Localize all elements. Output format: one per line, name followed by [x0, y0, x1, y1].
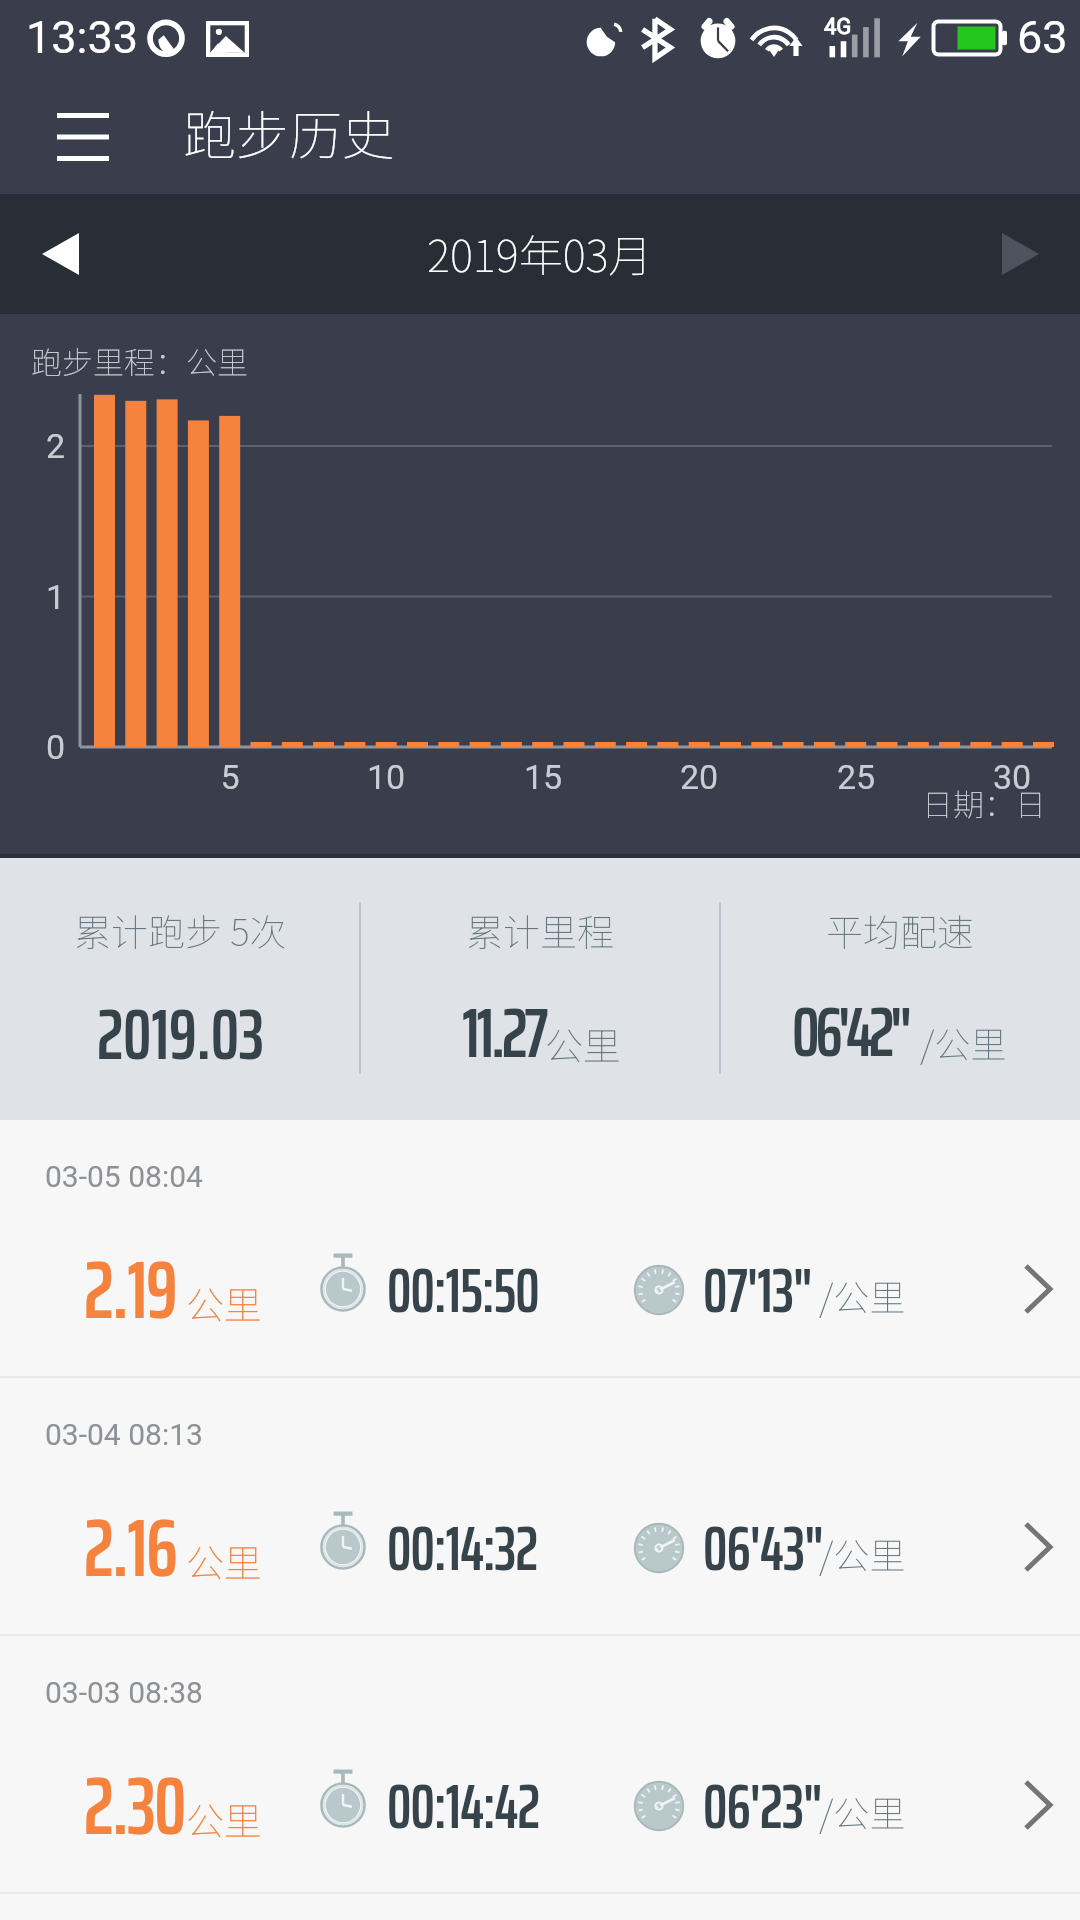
button[interactable]: Next month	[960, 194, 1080, 314]
staticText: 日期：日	[922, 780, 1046, 825]
staticText: 07'13"	[703, 1243, 812, 1339]
staticText: 跑步历史	[183, 94, 395, 171]
staticText: /公里	[819, 1785, 906, 1837]
staticText: 2.30	[84, 1743, 185, 1869]
staticText: 00:14:42	[387, 1759, 540, 1855]
staticText: 1	[46, 577, 66, 617]
staticText: 30	[982, 757, 1042, 797]
staticText: /公里	[920, 1016, 1007, 1068]
staticText: 63	[1017, 11, 1068, 64]
staticText: 4G	[824, 14, 852, 40]
staticText: 公里	[545, 1016, 622, 1071]
staticText: 10	[356, 757, 416, 797]
button[interactable]: Menu	[18, 80, 148, 194]
button[interactable]: View run detail	[996, 1494, 1080, 1578]
staticText: 03-04 08:13	[45, 1417, 203, 1452]
button[interactable]: 03-03 08:38	[0, 1636, 1080, 1892]
staticText: 06'42"	[792, 978, 908, 1087]
staticText: 06'23"	[703, 1759, 822, 1855]
staticText: 2	[46, 426, 66, 466]
button[interactable]: Previous month	[0, 194, 120, 314]
staticText: 13:33	[26, 11, 139, 64]
staticText: 累计跑步 5次	[74, 903, 287, 957]
button[interactable]: 03-05 08:04	[0, 1120, 1080, 1376]
staticText: 2019年03月	[427, 221, 653, 285]
staticText: 公里	[186, 1275, 263, 1330]
staticText: 00:14:32	[387, 1501, 538, 1597]
staticText: /公里	[819, 1527, 906, 1579]
staticText: 2.19	[84, 1227, 177, 1353]
button[interactable]: View run detail	[996, 1752, 1080, 1836]
staticText: 06'43"	[703, 1501, 823, 1597]
staticText: 0	[46, 727, 66, 767]
staticText: 03-03 08:38	[45, 1675, 203, 1710]
staticText: 20	[669, 757, 729, 797]
staticText: 平均配速	[826, 903, 974, 957]
staticText: 5	[200, 757, 260, 797]
staticText: 跑步里程：公里	[31, 338, 248, 383]
staticText: 00:15:50	[387, 1243, 539, 1339]
staticText: /公里	[819, 1269, 906, 1321]
staticText: 25	[826, 757, 886, 797]
button[interactable]: View run detail	[996, 1236, 1080, 1320]
staticText: 11.27	[462, 978, 546, 1088]
staticText: 公里	[186, 1533, 263, 1588]
staticText: 03-05 08:04	[45, 1159, 203, 1194]
button[interactable]: 03-04 08:13	[0, 1378, 1080, 1634]
staticText: 公里	[186, 1791, 263, 1846]
staticText: 2.16	[84, 1485, 177, 1611]
staticText: 15	[513, 757, 573, 797]
staticText: 2019.03	[97, 978, 264, 1090]
staticText: 累计里程	[466, 903, 614, 957]
